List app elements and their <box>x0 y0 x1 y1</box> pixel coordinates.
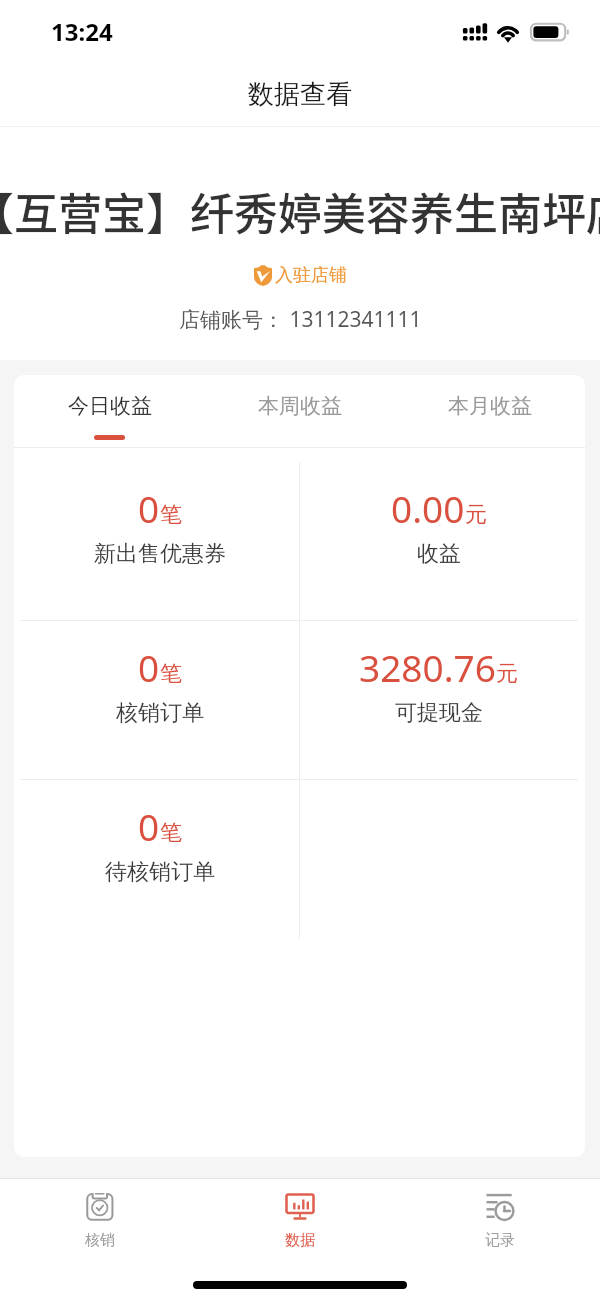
staticText: 元 <box>496 660 518 688</box>
button[interactable]: 本月收益 <box>395 375 585 447</box>
staticText: 13:24 <box>51 15 113 48</box>
staticText: 本月收益 <box>448 393 532 419</box>
staticText: 元 <box>465 501 487 529</box>
staticText: 可提现金 <box>395 699 483 727</box>
button[interactable]: 0 <box>21 462 299 620</box>
staticText: 店铺账号： 13112341111 <box>179 305 422 334</box>
staticText: 收益 <box>417 540 461 568</box>
staticText: 0 <box>138 642 160 692</box>
staticText: 数据查看 <box>248 78 352 111</box>
staticText: 笔 <box>160 819 182 847</box>
button[interactable]: 3280.76 <box>299 621 578 779</box>
button[interactable]: 记录 <box>400 1179 600 1259</box>
staticText: 待核销订单 <box>105 858 215 886</box>
staticText: 【互营宝】纤秀婷美容养生南坪店 <box>0 179 600 243</box>
staticText: 笔 <box>160 501 182 529</box>
staticText: 0.00 <box>391 483 465 533</box>
staticText: 新出售优惠券 <box>94 540 226 568</box>
button[interactable]: 本周收益 <box>205 375 395 447</box>
staticText: 数据 <box>285 1231 315 1250</box>
button[interactable]: 核销 <box>0 1179 200 1259</box>
button[interactable]: 数据 <box>200 1179 400 1259</box>
button[interactable]: 今日收益 <box>14 375 205 447</box>
staticText: 核销订单 <box>116 699 204 727</box>
staticText: 入驻店铺 <box>275 264 347 287</box>
staticText: 0 <box>138 483 160 533</box>
staticText: 核销 <box>85 1231 115 1250</box>
staticText: 本周收益 <box>258 393 342 419</box>
staticText: 0 <box>138 801 160 851</box>
button[interactable]: 0 <box>21 621 299 779</box>
staticText: 今日收益 <box>68 393 152 419</box>
staticText: 3280.76 <box>359 642 496 692</box>
staticText: 笔 <box>160 660 182 688</box>
button[interactable]: 0.00 <box>299 462 578 620</box>
button[interactable]: 0 <box>21 780 299 938</box>
staticText: 记录 <box>485 1231 515 1250</box>
